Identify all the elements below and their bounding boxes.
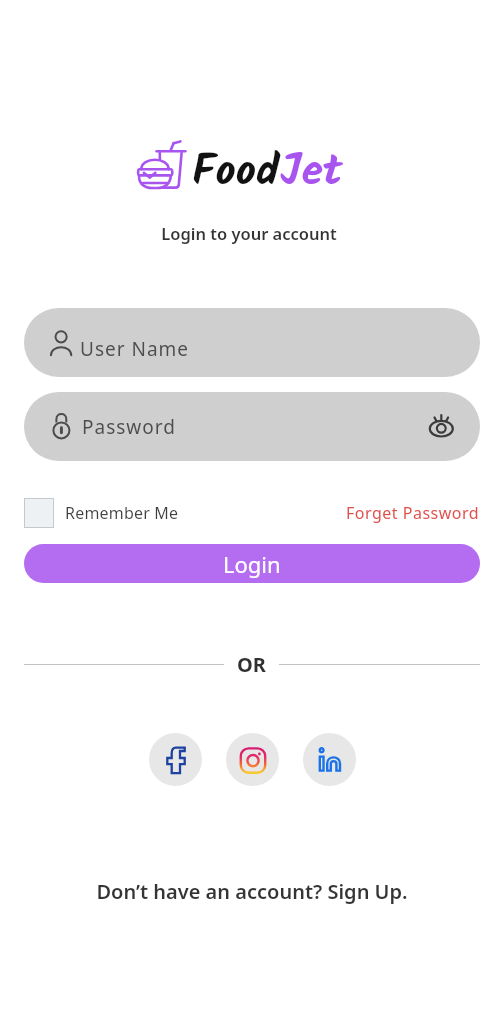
- button[interactable]: LinkedIn: [303, 733, 356, 786]
- staticText: Password: [82, 414, 176, 440]
- button[interactable]: Instagram: [226, 733, 279, 786]
- button[interactable]: Remember Me: [24, 498, 179, 528]
- staticText: Jet: [280, 138, 343, 208]
- button[interactable]: Don’t have an account? Sign Up.: [0, 878, 504, 905]
- staticText: Food: [192, 138, 280, 208]
- button[interactable]: User Name: [24, 308, 480, 377]
- button[interactable]: Forget Password: [346, 502, 480, 524]
- staticText: Login: [223, 549, 281, 579]
- button[interactable]: Show password: [428, 411, 460, 443]
- staticText: Login to your account: [0, 222, 501, 244]
- button[interactable]: Login: [24, 544, 480, 583]
- button[interactable]: Facebook: [149, 733, 202, 786]
- staticText: OR: [237, 651, 266, 678]
- staticText: Remember Me: [65, 502, 179, 524]
- staticText: User Name: [80, 336, 190, 362]
- button[interactable]: Password: [24, 392, 480, 461]
